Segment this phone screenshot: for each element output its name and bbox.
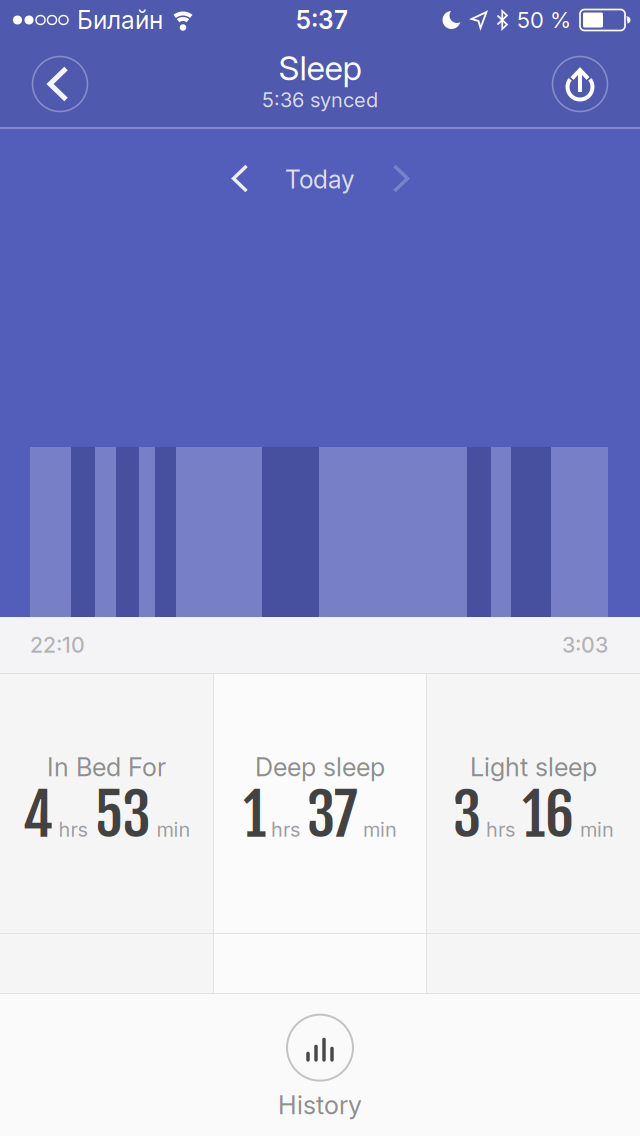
button[interactable]: Next day <box>382 154 419 203</box>
staticText: min <box>580 817 614 842</box>
staticText: 16 <box>522 779 574 851</box>
button[interactable]: Previous day <box>221 154 258 203</box>
staticText: min <box>363 817 397 842</box>
button[interactable]: History <box>278 1015 362 1120</box>
staticText: hrs <box>58 817 87 842</box>
staticText: 1 <box>243 779 266 851</box>
staticText: In Bed For <box>47 752 166 782</box>
staticText: 53 <box>94 779 150 851</box>
staticText: Deep sleep <box>255 752 385 782</box>
staticText: 5:37 <box>296 5 348 35</box>
staticText: 5:36 synced <box>262 88 378 112</box>
staticText: 22:10 <box>30 632 85 658</box>
staticText: Sleep <box>278 48 361 88</box>
staticText: min <box>156 817 190 842</box>
staticText: 37 <box>307 779 357 851</box>
staticText: Today <box>285 165 355 194</box>
staticText: Light sleep <box>470 752 597 782</box>
staticText: Билайн <box>77 5 163 35</box>
button[interactable]: Back <box>32 56 87 111</box>
staticText: hrs <box>486 817 515 842</box>
staticText: 50 % <box>517 7 571 33</box>
staticText: 4 <box>22 779 53 851</box>
staticText: hrs <box>271 817 300 842</box>
staticText: 3 <box>453 779 481 851</box>
staticText: History <box>278 1090 362 1120</box>
staticText: 3:03 <box>562 632 608 658</box>
button[interactable]: Share <box>552 56 607 111</box>
